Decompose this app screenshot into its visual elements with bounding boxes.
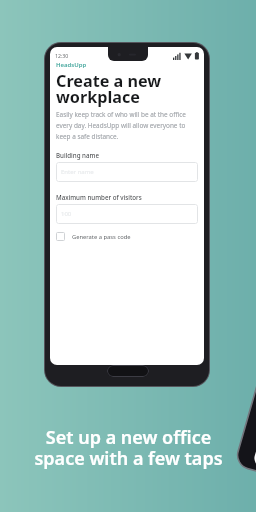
staticText: Create a new workplace: [56, 70, 162, 108]
staticText: Maximum number of visitors: [56, 193, 142, 201]
button[interactable]: Enter name: [56, 162, 198, 182]
staticText: Building name: [56, 151, 99, 159]
button[interactable]: Generate a pass code: [56, 232, 131, 241]
staticText: HeadsUpp: [56, 61, 87, 69]
staticText: Generate a pass code: [72, 233, 131, 241]
staticText: 100: [61, 210, 72, 218]
staticText: Enter name: [61, 168, 94, 176]
staticText: Easily keep track of who will be at the …: [56, 110, 186, 141]
staticText: Set up a new office space with a few tap…: [34, 425, 223, 471]
button[interactable]: 100: [56, 204, 198, 224]
staticText: 12:30: [55, 52, 69, 59]
